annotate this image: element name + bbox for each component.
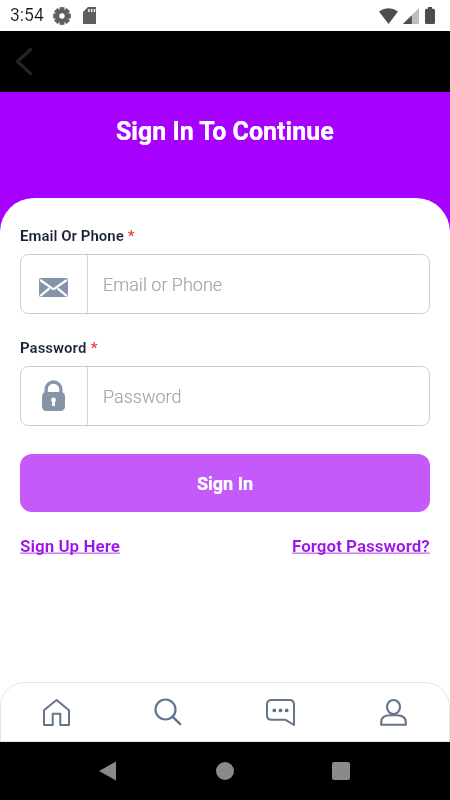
button[interactable] — [16, 48, 32, 75]
staticText: * — [87, 339, 98, 357]
button[interactable]: Sign In — [20, 454, 430, 512]
staticText: * — [124, 227, 135, 245]
staticText: Email Or Phone — [20, 227, 124, 245]
button[interactable]: Password — [20, 366, 430, 426]
button[interactable] — [0, 682, 112, 742]
staticText: Password — [103, 386, 182, 407]
staticText: 3:54 — [10, 5, 44, 26]
button[interactable] — [300, 742, 450, 800]
staticText: Password — [20, 339, 87, 357]
staticText: Sign In To Continue — [116, 117, 334, 146]
button[interactable] — [0, 742, 150, 800]
staticText: Sign In — [197, 473, 254, 494]
button[interactable]: Sign Up Here — [20, 536, 120, 556]
button[interactable] — [112, 682, 224, 742]
button[interactable]: Email or Phone — [20, 254, 430, 314]
staticText: Email or Phone — [103, 274, 223, 295]
button[interactable] — [150, 742, 300, 800]
button[interactable]: Forgot Password? — [292, 536, 430, 556]
button[interactable] — [224, 682, 337, 742]
button[interactable] — [337, 682, 450, 742]
